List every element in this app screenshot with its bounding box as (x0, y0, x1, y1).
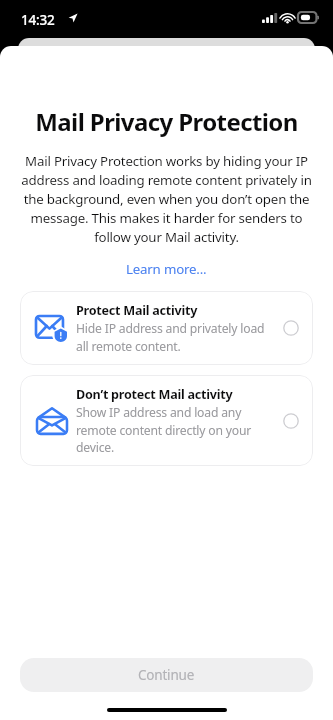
button[interactable]: Continue (20, 658, 313, 692)
staticText: Hide IP address and privately load all r… (76, 320, 272, 354)
staticText: Continue (138, 666, 195, 684)
staticText: Protect Mail activity (76, 302, 198, 319)
button[interactable]: Learn more... (118, 257, 215, 281)
button[interactable]: Select Protect Mail activity (280, 317, 302, 339)
staticText: 14:32 (21, 11, 55, 29)
staticText: Show IP address and load any remote cont… (76, 404, 272, 455)
staticText: Mail Privacy Protection (0, 105, 333, 138)
staticText: Learn more... (126, 260, 207, 278)
staticText: Don’t protect Mail activity (76, 386, 233, 403)
button[interactable]: Select Don’t protect Mail activity (280, 410, 302, 432)
button[interactable]: Don’t protect Mail activity (20, 375, 313, 466)
button[interactable]: Protect Mail activity (20, 291, 313, 365)
staticText: Mail Privacy Protection works by hiding … (21, 152, 312, 246)
